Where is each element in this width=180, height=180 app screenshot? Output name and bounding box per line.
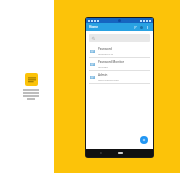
button[interactable]: More options	[145, 25, 150, 30]
staticText: Password Monitor	[98, 60, 125, 64]
button[interactable]: Add	[140, 136, 148, 144]
button[interactable]: App icon	[25, 73, 38, 86]
staticText: Home	[89, 25, 99, 29]
button[interactable]	[89, 34, 150, 42]
button[interactable]: Sort	[133, 25, 138, 30]
button[interactable]: Account	[139, 25, 144, 30]
button[interactable]: Password	[86, 45, 153, 57]
staticText: http://camion.com	[98, 78, 119, 81]
button[interactable]: Password Monitor	[86, 58, 153, 70]
button[interactable]: Back	[98, 150, 104, 156]
staticText: Password	[98, 47, 112, 51]
staticText: Admin	[98, 73, 108, 77]
button[interactable]: Admin	[86, 71, 153, 83]
staticText: mmmmn.c.id	[98, 52, 113, 55]
staticText: mccredit	[98, 65, 108, 68]
button[interactable]: Home	[116, 149, 124, 157]
